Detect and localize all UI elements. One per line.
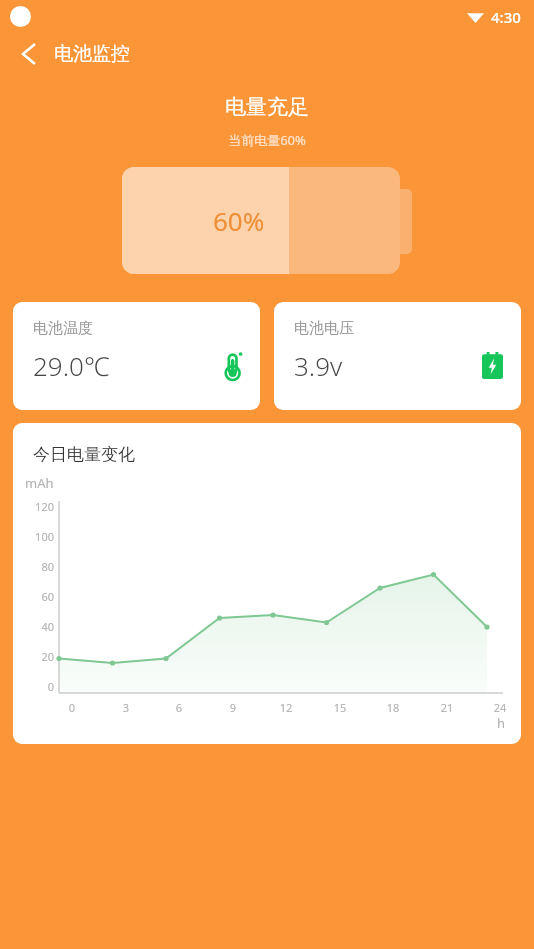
button[interactable]: 电池温度 bbox=[13, 302, 260, 410]
staticText: 24 bbox=[487, 700, 513, 715]
staticText: 电池监控 bbox=[54, 42, 130, 66]
staticText: 电量充足 bbox=[0, 94, 534, 120]
staticText: 20 bbox=[21, 649, 54, 664]
staticText: 电池电压 bbox=[294, 319, 354, 338]
staticText: 9 bbox=[220, 700, 246, 715]
staticText: 12 bbox=[273, 700, 299, 715]
staticText: 100 bbox=[21, 529, 54, 544]
staticText: 0 bbox=[21, 679, 54, 694]
staticText: h bbox=[497, 714, 506, 732]
staticText: 3.9v bbox=[294, 348, 343, 383]
staticText: 120 bbox=[21, 499, 54, 514]
staticText: 电池温度 bbox=[33, 319, 93, 338]
staticText: 80 bbox=[21, 559, 54, 574]
staticText: 21 bbox=[434, 700, 460, 715]
staticText: 6 bbox=[166, 700, 192, 715]
staticText: 0 bbox=[59, 700, 85, 715]
staticText: 今日电量变化 bbox=[33, 444, 135, 465]
staticText: 60% bbox=[213, 203, 265, 238]
button[interactable]: 今日电量变化 bbox=[13, 423, 521, 744]
staticText: 29.0℃ bbox=[33, 348, 110, 383]
button[interactable]: Back bbox=[12, 37, 46, 71]
staticText: 60 bbox=[21, 589, 54, 604]
staticText: 18 bbox=[380, 700, 406, 715]
staticText: 3 bbox=[113, 700, 139, 715]
staticText: 15 bbox=[327, 700, 353, 715]
staticText: 40 bbox=[21, 619, 54, 634]
staticText: 当前电量60% bbox=[0, 131, 534, 149]
staticText: mAh bbox=[25, 474, 54, 492]
staticText: 4:30 bbox=[491, 7, 521, 27]
button[interactable]: 电池电压 bbox=[274, 302, 521, 410]
